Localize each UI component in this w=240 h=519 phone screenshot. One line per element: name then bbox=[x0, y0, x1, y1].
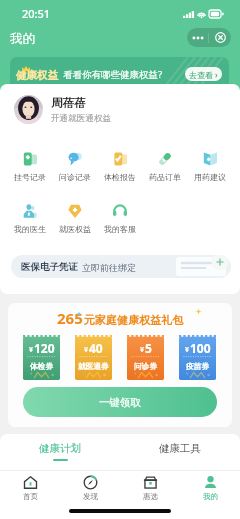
staticText: 120 bbox=[34, 340, 55, 356]
staticText: 健康权益 bbox=[16, 69, 58, 82]
button[interactable]: 周蓓蓓 bbox=[14, 95, 112, 124]
staticText: 健康工具 bbox=[159, 442, 201, 455]
staticText: 40 bbox=[89, 340, 103, 356]
staticText: 惠选 bbox=[143, 492, 158, 501]
button[interactable]: 惠选 bbox=[120, 471, 180, 505]
staticText: 发现 bbox=[83, 492, 98, 501]
button[interactable]: 我的客服 bbox=[97, 204, 142, 234]
button[interactable]: 我的 bbox=[180, 471, 240, 505]
staticText: 5 bbox=[145, 340, 152, 356]
staticText: 我的客服 bbox=[104, 224, 136, 234]
button[interactable]: 去查看 › bbox=[185, 67, 222, 81]
staticText: 我的医生 bbox=[14, 224, 46, 234]
staticText: 用药建议 bbox=[194, 172, 226, 182]
button[interactable]: 健康权益 bbox=[10, 57, 229, 90]
staticText: 看看你有哪些健康权益? bbox=[63, 68, 163, 81]
staticText: 就医权益 bbox=[59, 224, 91, 234]
button[interactable]: 就医权益 bbox=[52, 204, 97, 234]
button[interactable]: 健康工具 bbox=[120, 434, 240, 471]
button[interactable]: 用药建议 bbox=[187, 152, 232, 182]
staticText: 药品订单 bbox=[149, 172, 181, 182]
staticText: 开通就医通权益 bbox=[51, 113, 112, 124]
staticText: 我的 bbox=[10, 31, 35, 47]
button[interactable]: 我的医生 bbox=[8, 204, 52, 234]
button[interactable]: 问诊记录 bbox=[52, 152, 97, 182]
button[interactable]: 发现 bbox=[60, 471, 120, 505]
staticText: 元家庭健康权益礼包 bbox=[84, 313, 183, 327]
staticText: 我的 bbox=[203, 492, 218, 501]
button[interactable]: ¥ bbox=[23, 335, 60, 380]
staticText: ¥ bbox=[84, 345, 89, 355]
staticText: ¥ bbox=[29, 345, 34, 355]
staticText: 问诊记录 bbox=[59, 172, 91, 182]
button[interactable]: 健康计划 bbox=[0, 434, 120, 471]
staticText: 100 bbox=[190, 340, 211, 356]
button[interactable]: 一键领取 bbox=[23, 387, 217, 417]
staticText: 医保电子凭证 bbox=[21, 261, 78, 273]
button[interactable]: ¥ bbox=[179, 335, 216, 380]
staticText: 首页 bbox=[23, 492, 38, 501]
staticText: ¥ bbox=[185, 345, 190, 355]
staticText: 一键领取 bbox=[99, 396, 141, 409]
staticText: 20:51 bbox=[22, 6, 51, 21]
button[interactable]: 挂号记录 bbox=[8, 152, 52, 182]
staticText: ¥ bbox=[140, 345, 145, 355]
staticText: 疫苗券 bbox=[186, 362, 209, 372]
button[interactable]: ¥ bbox=[75, 335, 112, 380]
button[interactable]: 药品订单 bbox=[142, 152, 187, 182]
button[interactable]: ¥ bbox=[127, 335, 164, 380]
staticText: 去查看 › bbox=[189, 69, 218, 80]
staticText: 健康计划 bbox=[39, 442, 81, 455]
staticText: 挂号记录 bbox=[14, 172, 46, 182]
button[interactable]: Close mini program bbox=[209, 28, 231, 47]
staticText: 立即前往绑定 bbox=[82, 262, 136, 273]
button[interactable]: 体检报告 bbox=[97, 152, 142, 182]
staticText: 就医通券 bbox=[78, 362, 109, 372]
staticText: 问诊券 bbox=[134, 362, 157, 372]
staticText: 265 bbox=[57, 308, 83, 328]
staticText: 周蓓蓓 bbox=[51, 96, 86, 110]
staticText: 体检报告 bbox=[104, 172, 136, 182]
staticText: 体检券 bbox=[30, 362, 53, 372]
button[interactable]: More options bbox=[187, 28, 208, 47]
button[interactable]: 医保电子凭证 bbox=[11, 255, 231, 278]
button[interactable]: 首页 bbox=[0, 471, 60, 505]
